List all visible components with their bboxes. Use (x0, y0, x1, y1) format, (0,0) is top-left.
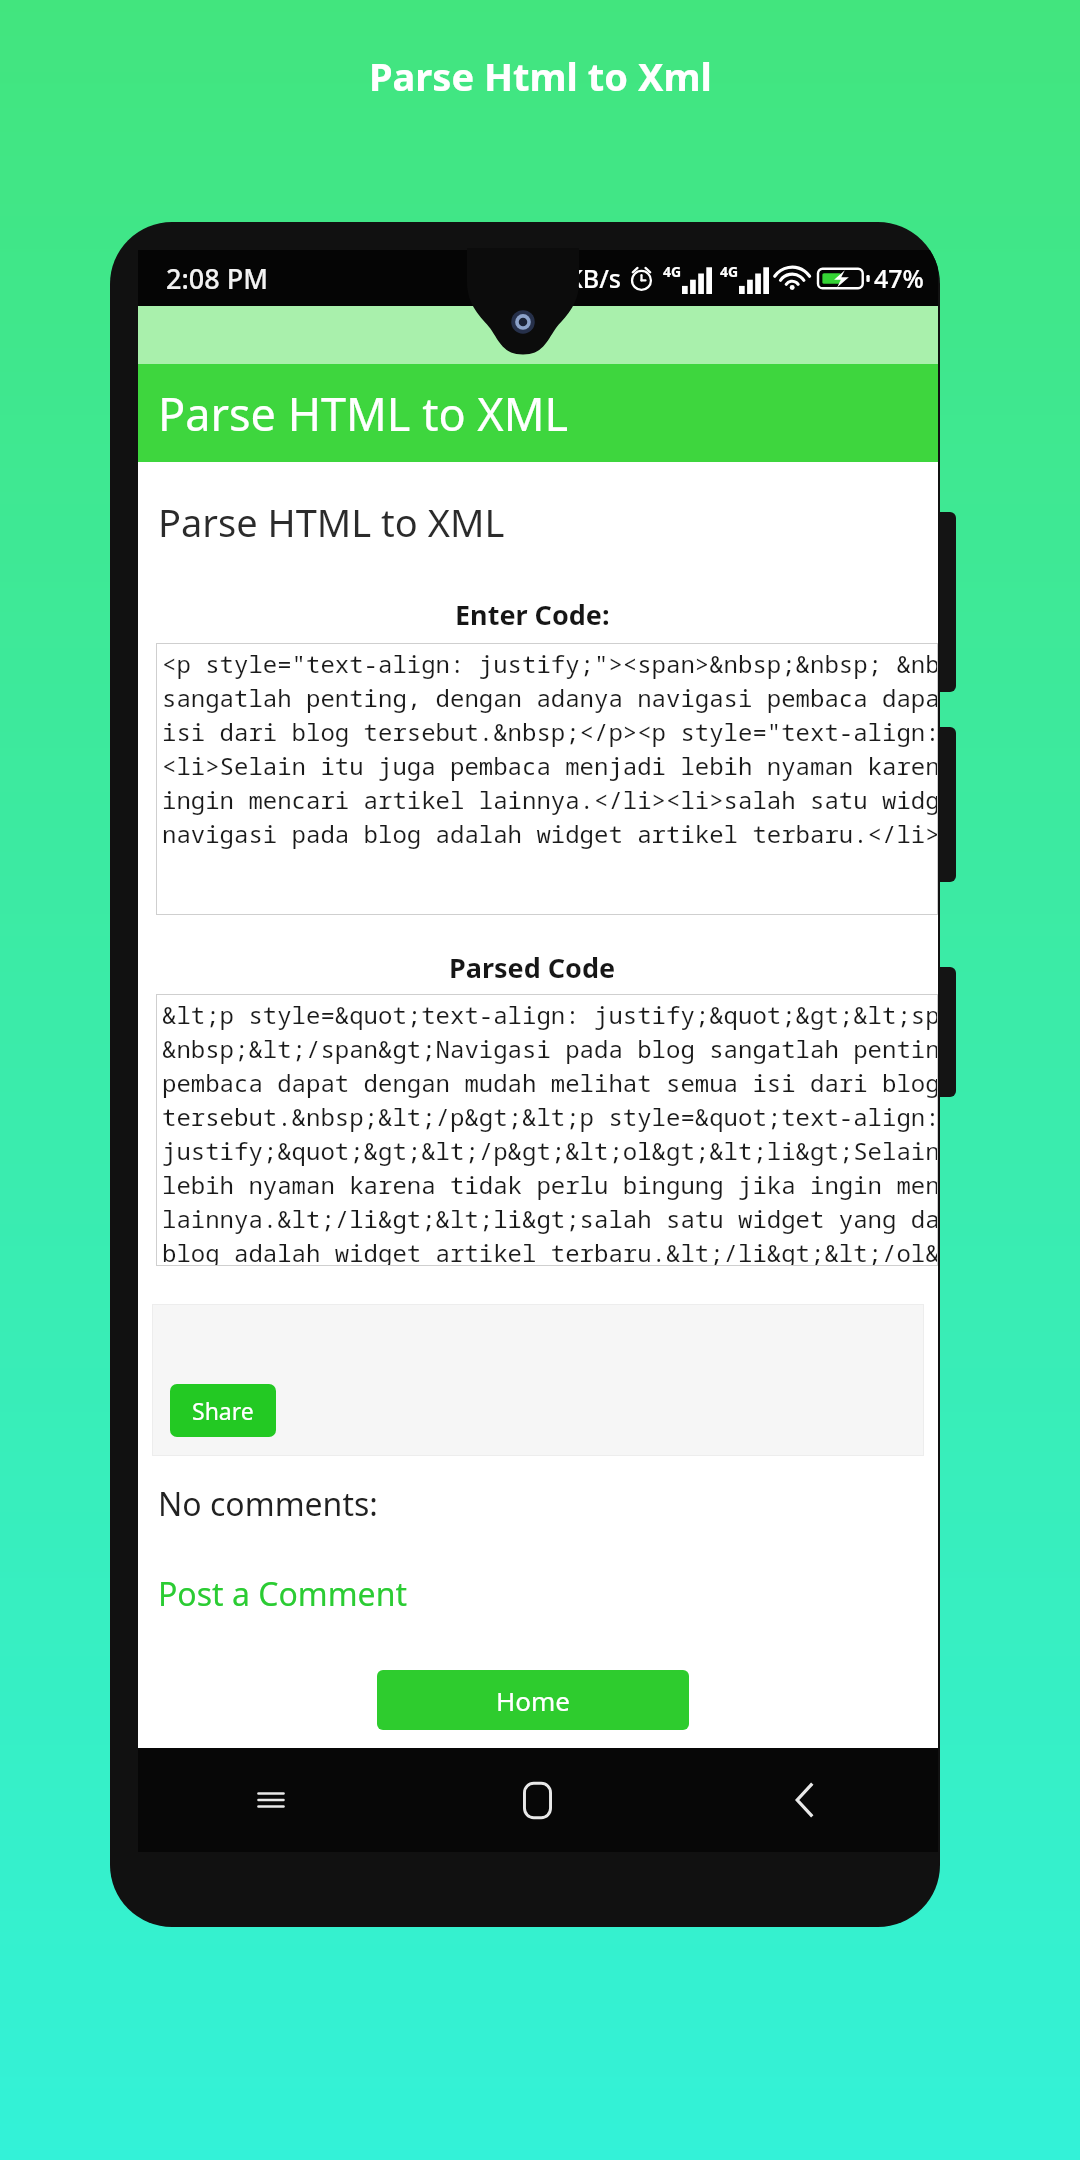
staticText: Parse HTML to XML (158, 383, 569, 444)
staticText: Parse HTML to XML (158, 496, 505, 548)
button[interactable]: Post a Comment (158, 1572, 407, 1616)
staticText: justify;&quot;&gt;&lt;/p&gt;&lt;ol&gt;&l… (162, 1134, 938, 1167)
staticText: Post a Comment (158, 1572, 407, 1616)
staticText: pembaca dapat dengan mudah melihat semua… (162, 1066, 938, 1099)
staticText: Parsed Code (449, 949, 616, 986)
staticText: sangatlah penting, dengan adanya navigas… (162, 681, 938, 714)
staticText: blog adalah widget artikel terbaru.&lt;/… (162, 1236, 938, 1266)
button[interactable]: Parse HTML to XML (138, 364, 938, 462)
staticText: <li>Selain itu juga pembaca menjadi lebi… (162, 749, 938, 782)
staticText: 47% (874, 261, 924, 295)
staticText: <p style="text-align: justify;"><span>&n… (162, 647, 938, 680)
button[interactable]: Recent apps (138, 1748, 404, 1852)
staticText: 4G (720, 262, 739, 281)
staticText: tersebut.&nbsp;&lt;/p&gt;&lt;p style=&qu… (162, 1100, 938, 1133)
staticText: Home (496, 1683, 570, 1718)
button[interactable]: Home (404, 1748, 671, 1852)
staticText: 4G (663, 262, 682, 281)
staticText: Share (192, 1395, 254, 1426)
button[interactable]: Home (377, 1670, 689, 1730)
staticText: &lt;p style=&quot;text-align: justify;&q… (162, 998, 938, 1031)
staticText: KB/s (567, 261, 621, 295)
staticText: isi dari blog tersebut.&nbsp;</p><p styl… (162, 715, 938, 748)
button[interactable]: Back (671, 1748, 938, 1852)
button[interactable]: Share (170, 1384, 276, 1437)
staticText: ingin mencari artikel lainnya.</li><li>s… (162, 783, 938, 816)
staticText: lainnya.&lt;/li&gt;&lt;li&gt;salah satu … (162, 1202, 938, 1235)
staticText: 2:08 PM (166, 260, 268, 297)
staticText: Enter Code: (455, 596, 610, 633)
staticText: No comments: (158, 1482, 378, 1526)
staticText: lebih nyaman karena tidak perlu bingung … (162, 1168, 938, 1201)
staticText: navigasi pada blog adalah widget artikel… (162, 817, 938, 850)
staticText: &nbsp;&lt;/span&gt;Navigasi pada blog sa… (162, 1032, 938, 1065)
staticText: Parse Html to Xml (369, 50, 712, 102)
